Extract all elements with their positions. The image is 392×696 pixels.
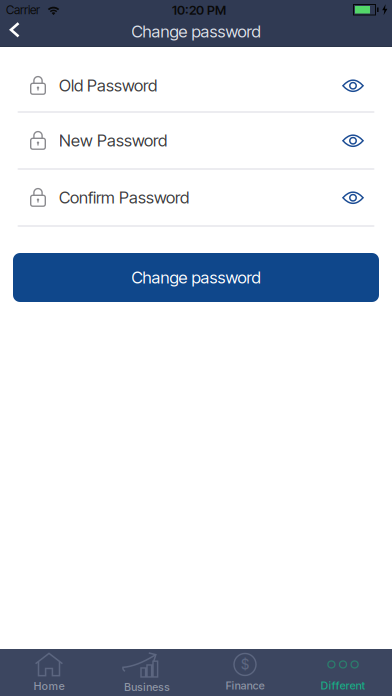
staticText: Confirm Password bbox=[59, 187, 189, 208]
staticText: $ bbox=[241, 656, 249, 673]
staticText: Home bbox=[33, 679, 64, 693]
staticText: Finance bbox=[225, 679, 264, 692]
staticText: 10:20 PM bbox=[172, 2, 226, 18]
button[interactable]: Show Old Password bbox=[342, 78, 392, 92]
button[interactable]: Show New Password bbox=[342, 133, 392, 147]
button[interactable]: Back bbox=[0, 22, 21, 38]
staticText: New Password bbox=[59, 130, 167, 151]
button[interactable]: Business bbox=[98, 649, 196, 696]
staticText: Business bbox=[124, 680, 170, 694]
button[interactable]: Change password bbox=[13, 253, 379, 302]
button[interactable]: $ bbox=[196, 649, 294, 696]
staticText: Change password bbox=[131, 21, 260, 42]
button[interactable]: Different bbox=[294, 649, 392, 696]
button[interactable]: Home bbox=[0, 649, 98, 696]
staticText: Different bbox=[320, 679, 365, 692]
staticText: Carrier bbox=[6, 3, 40, 17]
staticText: Old Password bbox=[59, 75, 157, 96]
button[interactable]: Show Confirm Password bbox=[342, 190, 392, 204]
staticText: Change password bbox=[131, 267, 260, 288]
